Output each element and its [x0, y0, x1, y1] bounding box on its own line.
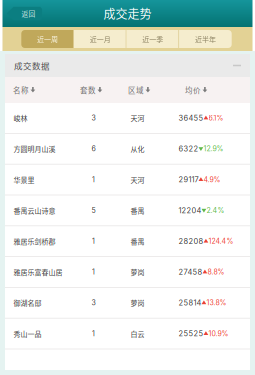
staticText: 1 — [92, 329, 95, 338]
staticText: 套数 — [80, 85, 96, 95]
staticText: 124.4% — [208, 237, 233, 245]
staticText: 8.8% — [207, 268, 224, 276]
button[interactable]: 秀山一品 — [5, 319, 250, 349]
staticText: 3 — [91, 114, 95, 122]
button[interactable]: 番禺云山诗意 — [5, 195, 250, 226]
staticText: 13.8% — [206, 299, 226, 307]
staticText: 萝岗 — [130, 298, 144, 308]
staticText: 3 — [91, 299, 95, 307]
staticText: 天河 — [130, 113, 144, 123]
staticText: 华景里 — [13, 174, 34, 185]
staticText: 御湖名邸 — [13, 298, 41, 308]
staticText: 近一月 — [90, 34, 111, 44]
button[interactable]: 雅居乐剑桥郡 — [5, 226, 250, 257]
staticText: 5 — [91, 206, 95, 215]
staticText: 番禺云山诗意 — [13, 205, 55, 215]
button[interactable]: 近半年 — [179, 30, 232, 48]
staticText: 从化 — [130, 144, 144, 154]
staticText: 近一季 — [142, 34, 163, 44]
staticText: 4.9% — [203, 175, 220, 184]
staticText: 白云 — [130, 328, 144, 339]
staticText: 12204 — [178, 206, 201, 215]
staticText: 1 — [92, 175, 95, 184]
staticText: 12.9% — [203, 145, 223, 153]
button[interactable]: 华景里 — [5, 165, 250, 195]
button[interactable]: 近一季 — [126, 30, 179, 48]
staticText: 均价 — [185, 85, 201, 95]
staticText: 雅居乐剑桥郡 — [13, 236, 55, 246]
staticText: 6 — [91, 145, 95, 153]
button[interactable]: 峻林 — [5, 103, 250, 134]
staticText: 6.1% — [208, 114, 223, 122]
button[interactable]: 返回 — [6, 7, 42, 20]
staticText: 名称 — [13, 85, 29, 95]
staticText: 1 — [92, 268, 95, 276]
button[interactable]: 雅居乐富春山居 — [5, 257, 250, 288]
staticText: 25814 — [178, 298, 201, 307]
button[interactable]: 均价 — [185, 85, 250, 95]
staticText: 方圆明月山溪 — [13, 144, 55, 154]
staticText: 雅居乐富春山居 — [13, 267, 62, 277]
staticText: 成交走势 — [103, 5, 151, 22]
button[interactable]: 套数 — [80, 85, 128, 95]
staticText: 返回 — [21, 9, 35, 18]
staticText: 29117 — [178, 175, 198, 184]
staticText: 1 — [92, 237, 95, 245]
button[interactable]: 近一周 — [21, 30, 74, 48]
staticText: 峻林 — [13, 113, 27, 123]
button[interactable]: 成交数据 — [5, 54, 250, 77]
staticText: 2.4% — [206, 206, 224, 215]
button[interactable]: 御湖名邸 — [5, 288, 250, 319]
staticText: 成交数据 — [14, 59, 50, 72]
staticText: 28208 — [178, 237, 203, 246]
staticText: 近半年 — [195, 34, 216, 44]
staticText: 萝岗 — [130, 267, 144, 277]
staticText: 36455 — [178, 113, 203, 123]
staticText: 番禺 — [130, 236, 144, 246]
staticText: 25525 — [178, 329, 203, 338]
staticText: 近一周 — [37, 34, 58, 44]
staticText: 区域 — [128, 85, 144, 95]
staticText: 番禺 — [130, 205, 144, 215]
button[interactable]: 名称 — [13, 85, 80, 95]
staticText: 天河 — [130, 174, 144, 185]
button[interactable]: 方圆明月山溪 — [5, 134, 250, 165]
staticText: 27458 — [178, 267, 202, 277]
button[interactable]: 近一月 — [74, 30, 126, 48]
staticText: 秀山一品 — [13, 328, 41, 339]
staticText: 6322 — [178, 144, 198, 153]
button[interactable]: 区域 — [128, 85, 180, 95]
staticText: 10.9% — [208, 329, 228, 338]
